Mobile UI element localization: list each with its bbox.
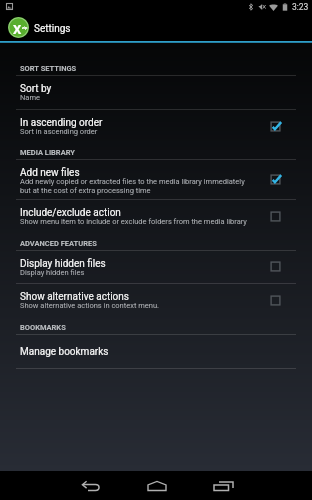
- button[interactable]: Recent apps: [196, 471, 252, 500]
- button[interactable]: Home: [130, 471, 186, 500]
- button[interactable]: Sort by: [0, 76, 312, 109]
- staticText: Sort in ascending order: [20, 127, 98, 136]
- button[interactable]: In ascending order: [0, 110, 312, 143]
- button[interactable]: Back: [63, 471, 119, 500]
- staticText: 3:23: [292, 2, 309, 12]
- staticText: Add newly copied or extracted files to t…: [20, 177, 245, 186]
- staticText: SORT SETTINGS: [20, 64, 77, 73]
- staticText: Show alternative actions in context menu…: [20, 301, 160, 310]
- staticText: Show alternative actions: [20, 291, 129, 303]
- staticText: Name: [20, 93, 40, 102]
- staticText: Show menu item to include or exclude fol…: [20, 217, 247, 226]
- staticText: Settings: [34, 23, 71, 35]
- button[interactable]: Show alternative actions: [0, 284, 312, 318]
- button[interactable]: Navigate up: [8, 17, 29, 38]
- button[interactable]: Add new files: [0, 160, 312, 199]
- button[interactable]: Display hidden files: [0, 251, 312, 283]
- staticText: but at the cost of extra processing time: [20, 186, 151, 195]
- button[interactable]: Manage bookmarks: [0, 335, 312, 368]
- staticText: Sort by: [20, 83, 52, 95]
- staticText: zip: [22, 25, 28, 30]
- staticText: Display hidden files: [20, 268, 85, 277]
- staticText: Display hidden files: [20, 258, 106, 270]
- staticText: In ascending order: [20, 117, 103, 129]
- staticText: BOOKMARKS: [20, 323, 66, 332]
- staticText: ADVANCED FEATURES: [20, 239, 97, 248]
- staticText: Include/exclude action: [20, 207, 121, 219]
- staticText: MEDIA LIBRARY: [20, 148, 75, 157]
- staticText: Manage bookmarks: [20, 346, 109, 358]
- staticText: X: [13, 22, 22, 37]
- staticText: Add new files: [20, 167, 80, 179]
- button[interactable]: Include/exclude action: [0, 200, 312, 234]
